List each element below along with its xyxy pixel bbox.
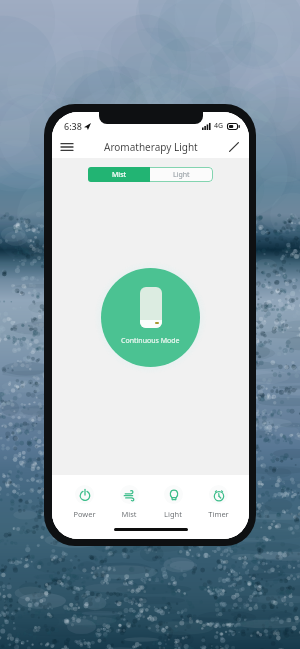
staticText: Mist [112,170,127,180]
button[interactable]: Menu [57,137,77,157]
staticText: Power [73,509,96,519]
button[interactable]: Timer [196,485,240,519]
staticText: Timer [208,509,229,519]
staticText: Continuous Mode [121,336,180,346]
button[interactable]: Continuous Mode [101,268,200,367]
button[interactable]: Light [151,485,195,519]
button[interactable]: Mist [88,167,150,182]
staticText: 6:38 [64,120,82,132]
staticText: Light [164,509,182,519]
staticText: Mist [121,509,137,519]
button[interactable]: Power [62,485,106,519]
staticText: Aromatherapy Light [104,140,198,154]
staticText: Light [173,170,190,180]
button[interactable]: Edit [224,137,244,157]
button[interactable]: Mist [107,485,151,519]
staticText: 4G [214,121,224,131]
button[interactable]: Light [150,167,213,182]
